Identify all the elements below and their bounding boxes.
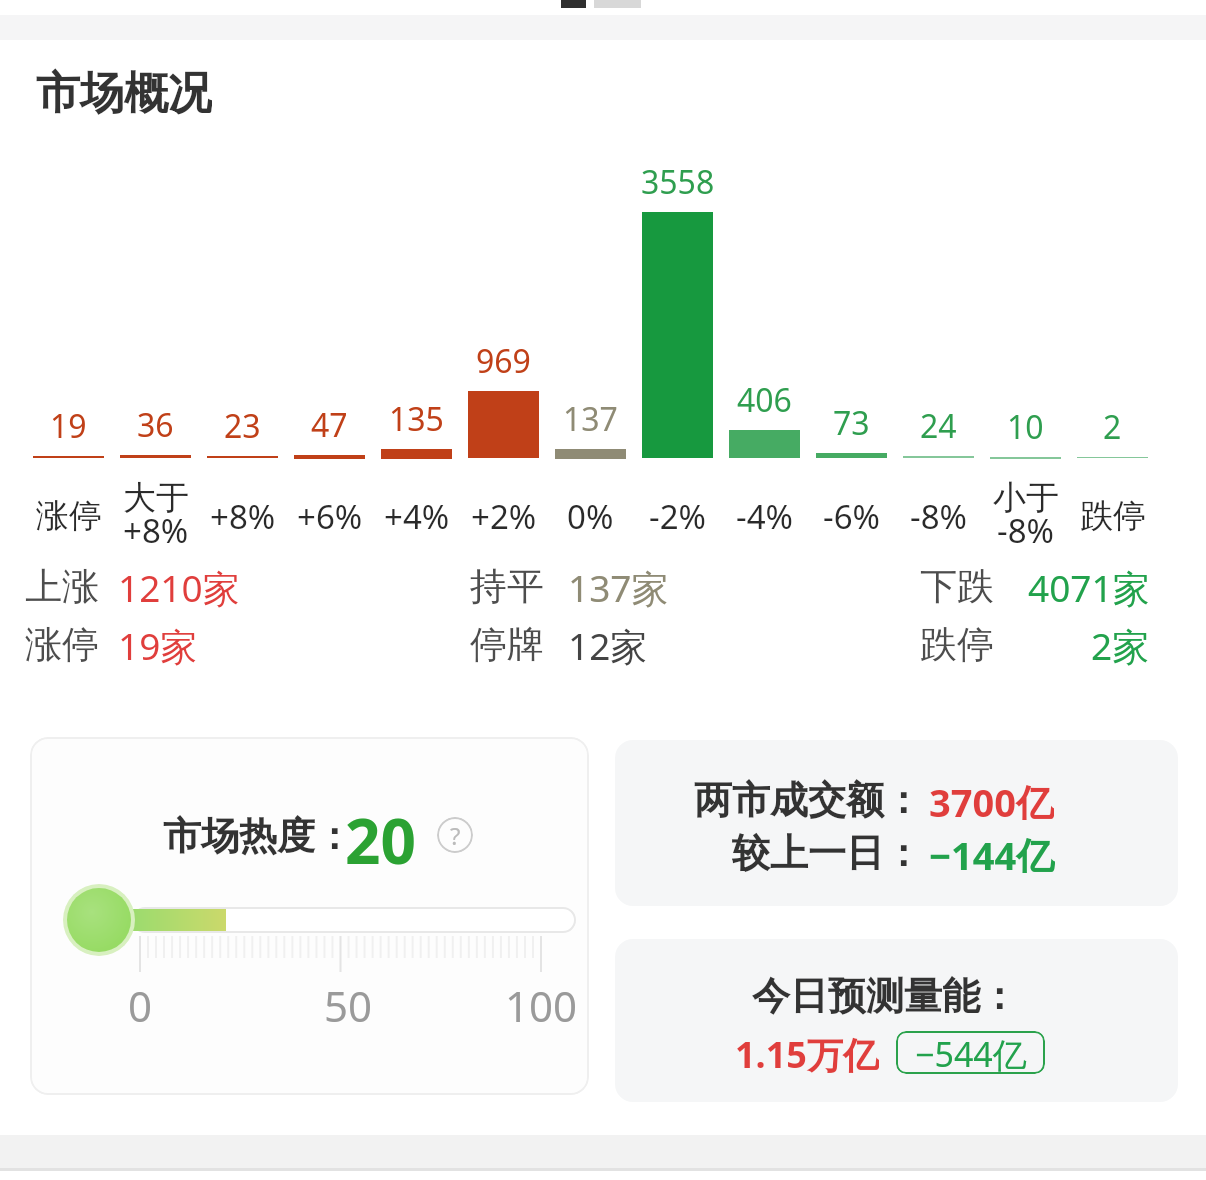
staticText: 跌停 [1080,495,1146,537]
staticText: 今日预测量能： [752,972,1018,1016]
staticText: 市场热度： [163,812,353,860]
staticText: +8% [210,494,276,538]
staticText: -8% [997,508,1054,552]
staticText: −144亿 [929,829,1055,873]
staticText: 20 [345,798,416,874]
staticText: 12家 [568,620,648,668]
staticText: 3700亿 [929,776,1054,820]
staticText: -2% [649,494,706,538]
staticText: 10 [1007,405,1044,445]
staticText: 较上一日： [732,829,922,873]
staticText: 100 [505,977,578,1029]
staticText: −544亿 [915,1031,1027,1074]
button[interactable]: ? [437,817,473,853]
staticText: +6% [297,494,363,538]
staticText: 19家 [118,620,198,668]
staticText: -6% [823,494,880,538]
staticText: 涨停 [36,495,102,537]
staticText: 406 [737,378,792,418]
staticText: 137家 [568,562,669,610]
staticText: 跌停 [920,621,994,668]
staticText: 大于 [123,477,189,519]
staticText: -4% [736,494,793,538]
staticText: 4071家 [1028,562,1150,610]
staticText: -8% [910,494,967,538]
staticText: 19 [50,404,87,444]
staticText: 涨停 [25,621,99,668]
staticText: 3558 [641,160,715,200]
staticText: 47 [311,403,348,443]
staticText: 0% [567,494,614,538]
staticText: 73 [833,401,870,441]
staticText: 1210家 [118,562,240,610]
staticText: +2% [471,494,537,538]
staticText: 50 [324,977,373,1029]
staticText: 2 [1103,405,1122,445]
staticText: 969 [476,339,531,379]
button[interactable]: 今日预测量能： [615,939,1178,1102]
staticText: +4% [384,494,450,538]
staticText: 两市成交额： [694,776,922,820]
staticText: 小于 [993,477,1059,519]
staticText: 下跌 [920,563,994,610]
staticText: 持平 [470,563,544,610]
button[interactable]: 两市成交额： [615,740,1178,906]
staticText: 36 [137,403,174,443]
staticText: 2家 [1091,620,1150,668]
staticText: ? [450,819,461,852]
staticText: 24 [920,404,957,444]
staticText: 137 [563,397,618,437]
button[interactable]: 市场热度： [30,737,589,1095]
staticText: 135 [389,397,444,437]
staticText: 0 [128,977,153,1029]
staticText: 市场概况 [36,66,212,116]
staticText: 1.15万亿 [735,1030,879,1074]
staticText: 上涨 [25,563,99,610]
staticText: +8% [123,508,189,552]
staticText: 停牌 [470,621,544,668]
staticText: 23 [224,404,261,444]
